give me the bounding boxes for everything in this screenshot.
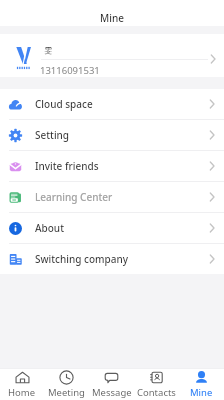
staticText: Invite friends (35, 159, 99, 173)
staticText: Learning Center (35, 190, 113, 204)
button[interactable]: Message (89, 369, 134, 399)
staticText: Home (8, 386, 36, 399)
staticText: About (35, 221, 64, 235)
staticText: Meeting (48, 386, 85, 399)
button[interactable]: 雯 (0, 34, 224, 77)
button[interactable]: Learning Center (0, 182, 224, 212)
button[interactable]: About (0, 213, 224, 243)
button[interactable]: Home (0, 369, 44, 399)
staticText: Message (92, 386, 132, 399)
staticText: Mine (100, 11, 124, 25)
staticText: Mine (190, 386, 213, 399)
staticText: Contacts (137, 386, 176, 399)
button[interactable]: Cloud space (0, 89, 224, 119)
button[interactable]: Mine (179, 369, 224, 399)
staticText: 13116091531 (40, 64, 100, 77)
button[interactable]: Contacts (134, 369, 179, 399)
staticText: Setting (35, 128, 70, 142)
button[interactable]: Switching company (0, 244, 224, 274)
button[interactable]: Invite friends (0, 151, 224, 181)
staticText: Switching company (35, 252, 129, 266)
button[interactable]: Setting (0, 120, 224, 150)
staticText: Cloud space (35, 97, 93, 111)
staticText: 雯 (44, 45, 52, 55)
button[interactable]: Meeting (44, 369, 89, 399)
